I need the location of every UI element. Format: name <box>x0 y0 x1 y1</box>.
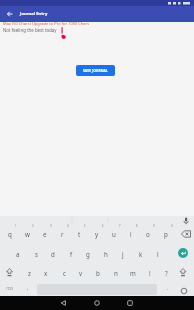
button[interactable]: n <box>109 267 123 279</box>
staticText: x <box>44 269 48 277</box>
staticText: j <box>122 250 124 258</box>
button[interactable]: f <box>64 248 78 260</box>
staticText: o <box>146 230 150 238</box>
staticText: f <box>70 250 73 258</box>
staticText: n <box>114 269 118 277</box>
button[interactable]: r <box>55 228 69 240</box>
staticText: r <box>61 230 64 238</box>
button[interactable]: SAVE JOURNAL <box>76 65 115 76</box>
button[interactable] <box>0 296 64 310</box>
button[interactable]: h <box>99 248 113 260</box>
button[interactable]: x <box>39 267 53 279</box>
staticText: g <box>86 250 90 258</box>
staticText: 9 <box>153 224 155 228</box>
staticText: w <box>25 230 30 238</box>
staticText: 1 <box>15 224 17 228</box>
button[interactable]: d <box>46 248 60 260</box>
button[interactable] <box>64 296 129 310</box>
button[interactable]: c <box>57 267 71 279</box>
button[interactable]: p <box>159 228 173 240</box>
button[interactable]: l <box>151 248 165 260</box>
staticText: , <box>27 285 29 292</box>
staticText: v <box>79 269 83 277</box>
staticText: c <box>63 269 66 277</box>
staticText: l <box>157 250 159 258</box>
staticText: ! <box>149 269 151 277</box>
button[interactable]: w <box>20 228 34 240</box>
staticText: q <box>8 230 12 238</box>
staticText: i <box>130 230 132 238</box>
staticText: ? <box>165 269 168 277</box>
staticText: SAVE JOURNAL <box>83 68 108 73</box>
staticText: ?123 <box>6 287 13 291</box>
button[interactable]: ?123 <box>2 283 16 295</box>
staticText: Max (50 Chars) Upgrade to Pro for 1000 C… <box>3 21 90 26</box>
button[interactable]: a <box>11 248 25 260</box>
staticText: 3 <box>50 224 52 228</box>
staticText: b <box>96 269 100 277</box>
button[interactable]: j <box>116 248 130 260</box>
button[interactable]: ! <box>143 267 157 279</box>
button[interactable]: o <box>141 228 155 240</box>
button[interactable]: t <box>72 228 86 240</box>
button[interactable] <box>6 10 14 18</box>
staticText: 8 <box>136 224 138 228</box>
button[interactable]: . <box>161 282 175 294</box>
staticText: u <box>112 230 116 238</box>
button[interactable]: y <box>90 228 104 240</box>
button[interactable]: q <box>3 228 17 240</box>
button[interactable]: k <box>134 248 148 260</box>
staticText: 2 <box>32 224 34 228</box>
staticText: 0 <box>171 224 173 228</box>
button[interactable] <box>129 296 194 310</box>
staticText: k <box>139 250 143 258</box>
button[interactable]: g <box>81 248 95 260</box>
staticText: t <box>78 230 81 238</box>
button[interactable]: s <box>29 248 43 260</box>
button[interactable]: b <box>91 267 105 279</box>
button[interactable]: e <box>38 228 52 240</box>
staticText: 7 <box>119 224 121 228</box>
staticText: Not feeling the best today <box>3 27 57 33</box>
button[interactable]: v <box>74 267 88 279</box>
staticText: y <box>95 230 99 238</box>
staticText: m <box>130 269 136 277</box>
staticText: 5 <box>84 224 86 228</box>
staticText: d <box>51 250 55 258</box>
staticText: 4 <box>67 224 69 228</box>
staticText: e <box>43 230 47 238</box>
staticText: p <box>164 230 168 238</box>
button[interactable] <box>178 248 188 258</box>
button[interactable]: m <box>126 267 140 279</box>
staticText: Journal Entry <box>20 11 48 17</box>
staticText: h <box>104 250 108 258</box>
staticText: 6 <box>102 224 104 228</box>
staticText: . <box>167 285 169 292</box>
button[interactable]: z <box>22 267 36 279</box>
staticText: z <box>28 269 31 277</box>
button[interactable]: ? <box>159 267 173 279</box>
staticText: s <box>35 250 38 258</box>
button[interactable]: , <box>21 282 35 294</box>
staticText: a <box>16 250 20 258</box>
button[interactable]: u <box>107 228 121 240</box>
button[interactable]: i <box>124 228 138 240</box>
